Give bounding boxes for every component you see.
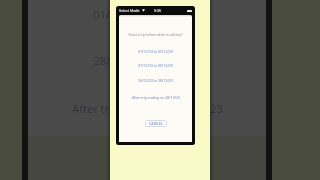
staticText: 28/12/23 to 30/12/23 xyxy=(93,53,202,68)
button[interactable]: After trip ending on 28/12/23 xyxy=(119,95,192,100)
staticText: 26/12/23 to 28/12/23 xyxy=(138,78,173,83)
other: Battery xyxy=(187,10,192,12)
staticText: Select a trip before which to add trip? xyxy=(128,33,183,37)
button[interactable]: CANCEL xyxy=(145,120,167,127)
staticText: CANCEL xyxy=(149,121,163,126)
staticText: Select Mode xyxy=(119,8,140,13)
staticText: 07/12/23 to 09/12/23 xyxy=(138,63,173,68)
button[interactable]: 26/12/23 to 28/12/23 xyxy=(119,78,192,83)
staticText: 01/12/23 to 03/12/23 xyxy=(93,7,202,22)
staticText: After trip ending on 28/12/23 xyxy=(72,101,223,116)
button[interactable]: 01/12/23 to 03/12/23 xyxy=(119,49,192,54)
staticText: 01/12/23 to 03/12/23 xyxy=(138,49,173,54)
staticText: After trip ending on 28/12/23 xyxy=(132,95,180,100)
staticText: 9:36 xyxy=(154,8,162,13)
button[interactable]: 07/12/23 to 09/12/23 xyxy=(119,63,192,68)
